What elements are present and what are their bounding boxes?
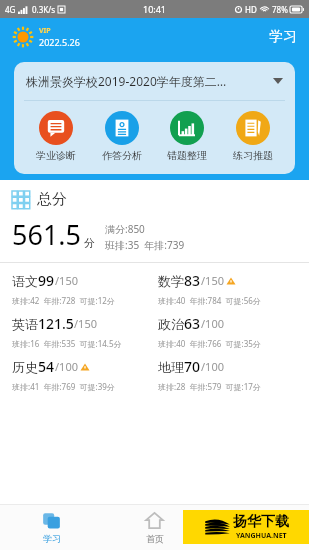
staticText: /150 <box>74 316 97 331</box>
staticText: 历史 <box>12 359 38 375</box>
other: VIP logo <box>12 26 34 48</box>
staticText: 政治 <box>158 316 184 332</box>
staticText: 0.3K/s <box>32 4 56 15</box>
staticText: 2022.5.26 <box>39 36 80 48</box>
button[interactable]: 历史 <box>12 357 150 392</box>
staticText: /100 <box>55 359 78 374</box>
staticText: 学习 <box>269 28 297 46</box>
staticText: 班排:16 年排:535 可提:14.5分 <box>12 338 122 349</box>
staticText: /150 <box>55 273 78 288</box>
staticText: 班排:28 年排:579 可提:17分 <box>158 381 261 392</box>
button[interactable]: 错题整理 <box>164 111 210 162</box>
staticText: VIP <box>39 26 51 36</box>
button[interactable]: 学习 <box>0 504 103 550</box>
staticText: 错题整理 <box>167 149 207 162</box>
staticText: 561.5 <box>12 216 82 253</box>
staticText: 首页 <box>146 533 164 544</box>
staticText: 班排:40 年排:784 可提:56分 <box>158 295 261 306</box>
staticText: 63 <box>184 314 201 333</box>
button[interactable]: 政治 <box>158 314 301 349</box>
staticText: 班排:40 年排:766 可提:35分 <box>158 338 261 349</box>
button[interactable]: 学习 <box>257 22 309 52</box>
staticText: /100 <box>201 316 224 331</box>
staticText: 54 <box>38 357 55 376</box>
staticText: 78% <box>272 4 288 15</box>
staticText: 学习 <box>43 533 61 544</box>
button[interactable]: 练习推题 <box>230 111 276 162</box>
staticText: 99 <box>38 271 55 290</box>
staticText: 83 <box>184 271 201 290</box>
staticText: 班排:41 年排:769 可提:39分 <box>12 381 115 392</box>
button[interactable]: 数学 <box>158 271 301 306</box>
staticText: 10:41 <box>143 3 167 15</box>
staticText: 学业诊断 <box>36 149 76 162</box>
staticText: YANGHUA.NET <box>236 531 287 541</box>
button[interactable]: 英语 <box>12 314 150 349</box>
staticText: 语文 <box>12 273 38 289</box>
staticText: 英语 <box>12 316 38 332</box>
staticText: 作答分析 <box>102 149 142 162</box>
staticText: 4G <box>5 4 16 15</box>
staticText: 分 <box>84 236 95 250</box>
staticText: 121.5 <box>38 314 74 333</box>
staticText: 扬华下载 <box>233 513 289 531</box>
staticText: 数学 <box>158 273 184 289</box>
staticText: 地理 <box>158 359 184 375</box>
staticText: /150 <box>201 273 224 288</box>
staticText: /100 <box>201 359 224 374</box>
button[interactable]: 地理 <box>158 357 301 392</box>
button[interactable]: 作答分析 <box>99 111 145 162</box>
button[interactable]: 首页 <box>103 504 206 550</box>
staticText: 练习推题 <box>233 149 273 162</box>
button[interactable]: 学业诊断 <box>33 111 79 162</box>
staticText: HD <box>245 4 257 15</box>
button[interactable]: 株洲景炎学校2019-2020学年度第二… <box>14 62 295 100</box>
staticText: 班排:42 年排:728 可提:12分 <box>12 295 115 306</box>
staticText: 班排:35 年排:739 <box>105 238 185 252</box>
staticText: 满分:850 <box>105 222 145 236</box>
staticText: 70 <box>184 357 201 376</box>
button[interactable]: 语文 <box>12 271 150 306</box>
staticText: 株洲景炎学校2019-2020学年度第二… <box>26 73 267 89</box>
staticText: 总分 <box>37 190 67 209</box>
